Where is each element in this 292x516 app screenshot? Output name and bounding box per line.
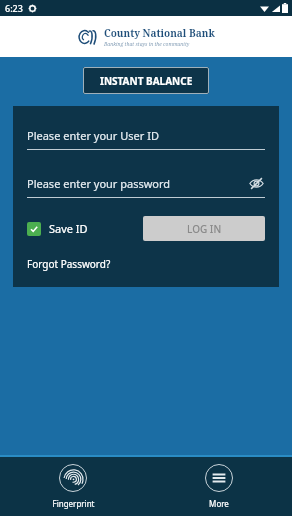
staticText: Please enter your User ID bbox=[27, 128, 159, 143]
staticText: Banking that stays in the community bbox=[104, 41, 190, 48]
button[interactable]: Forgot Password? bbox=[27, 257, 111, 271]
staticText: County National Bank bbox=[104, 26, 215, 40]
button[interactable]: Save ID bbox=[27, 221, 88, 236]
button[interactable]: INSTANT BALANCE bbox=[83, 67, 209, 94]
staticText: Please enter your password bbox=[27, 176, 247, 191]
staticText: More bbox=[209, 498, 229, 509]
staticText: LOG IN bbox=[187, 222, 222, 236]
staticText: Save ID bbox=[49, 221, 88, 236]
button[interactable]: LOG IN bbox=[143, 216, 265, 241]
button[interactable]: Please enter your User ID bbox=[27, 128, 265, 150]
button[interactable]: More options bbox=[146, 457, 292, 516]
staticText: Fingerprint bbox=[52, 498, 95, 509]
button[interactable]: Fingerprint login bbox=[0, 457, 146, 516]
staticText: 6:23 bbox=[5, 2, 23, 14]
button[interactable]: Please enter your password bbox=[27, 174, 265, 198]
staticText: INSTANT BALANCE bbox=[100, 74, 193, 88]
button[interactable]: Show password bbox=[247, 174, 265, 192]
